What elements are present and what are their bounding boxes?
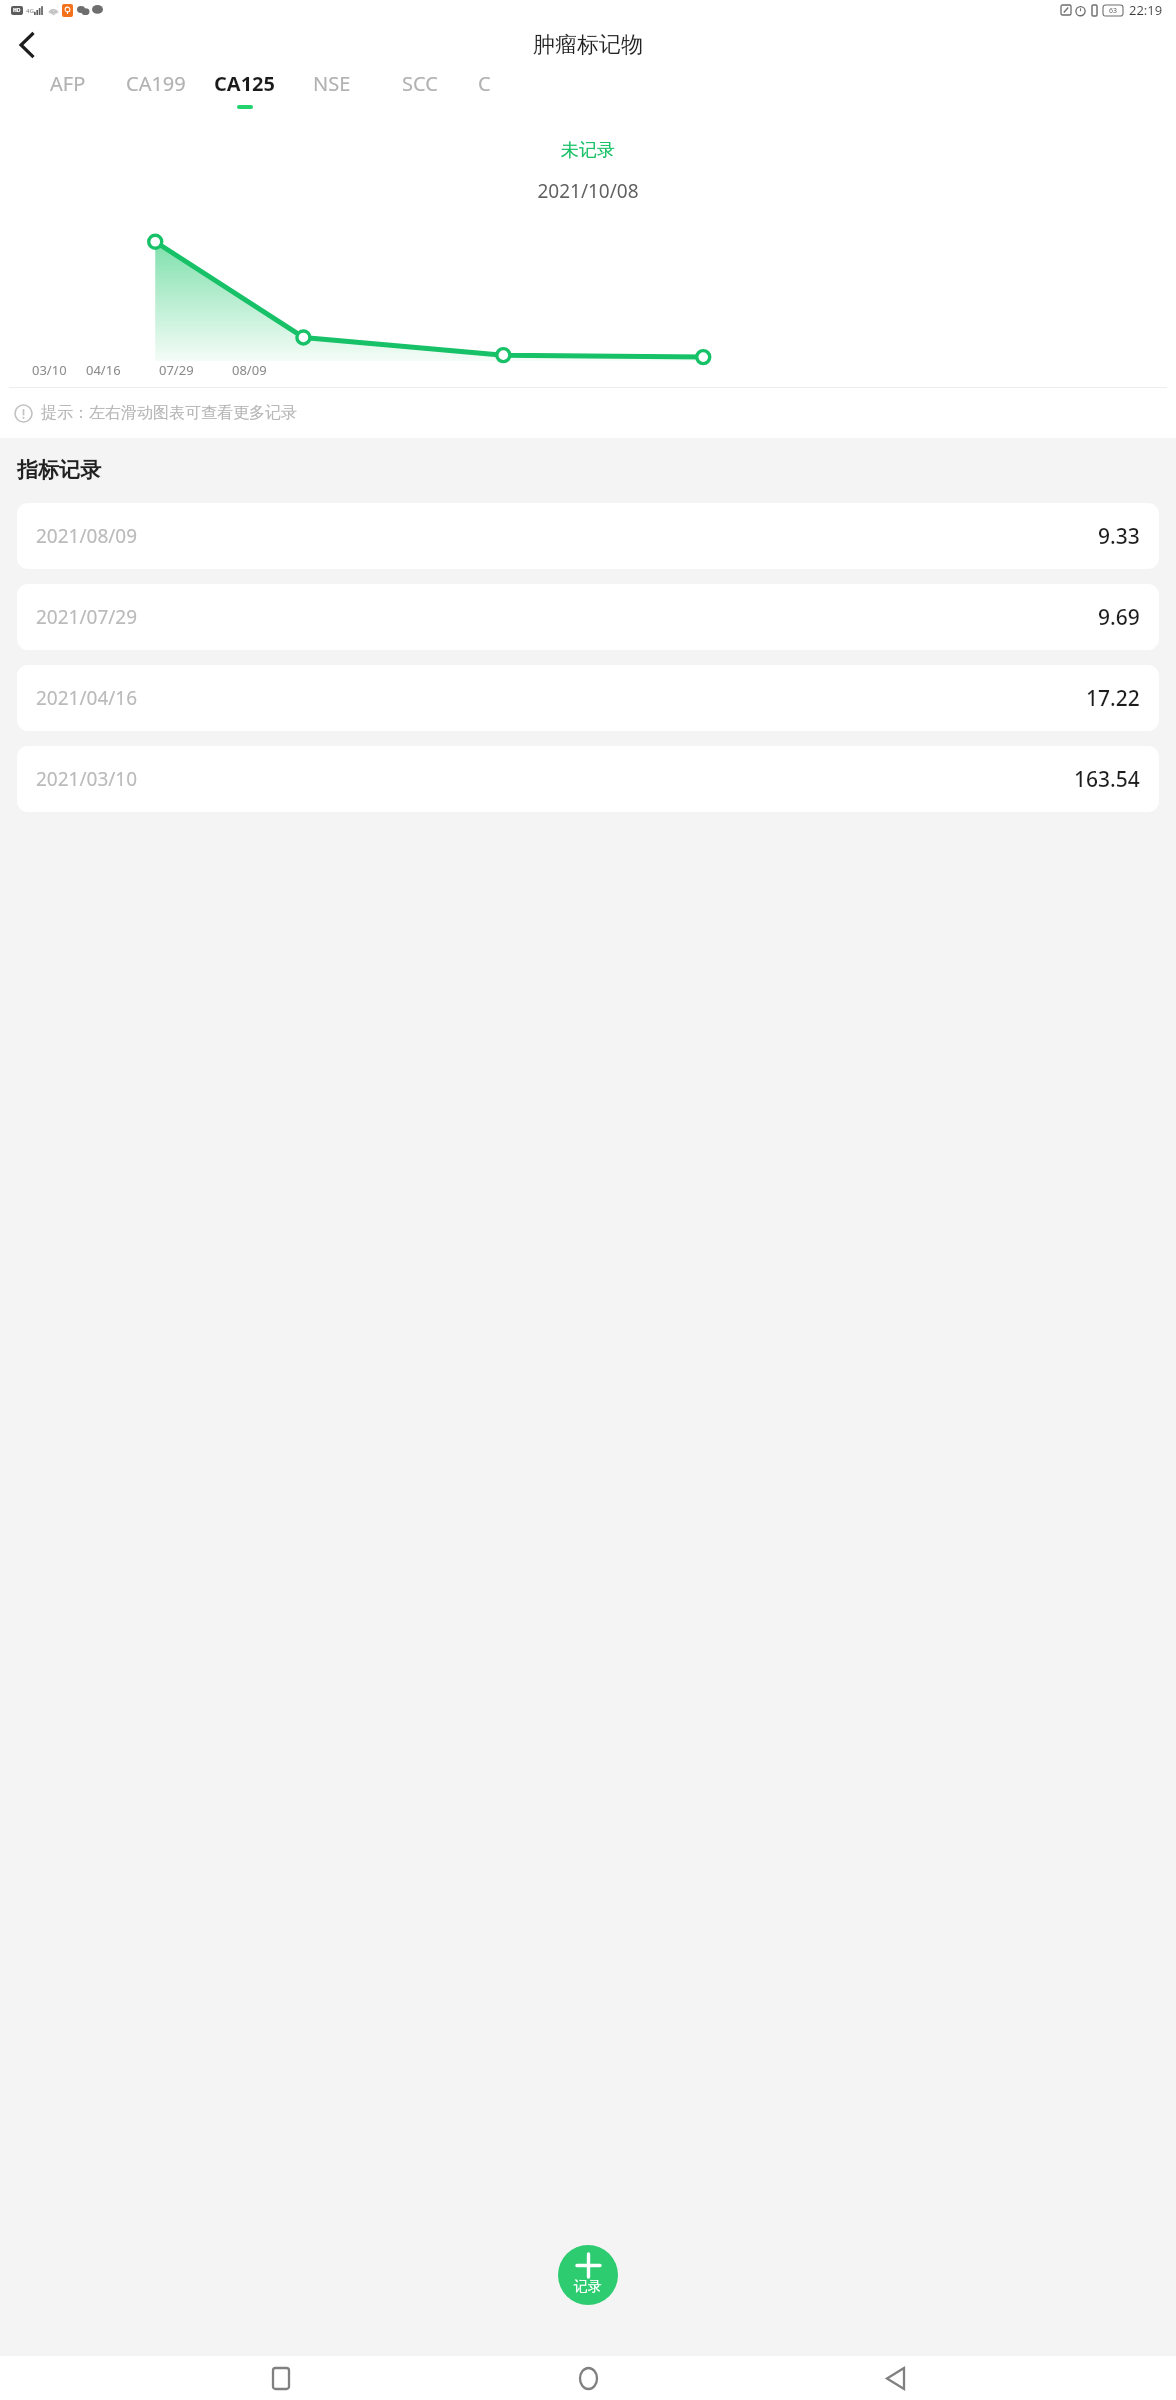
staticText: 08/09 [232, 361, 267, 379]
staticText: 记录 [574, 2278, 602, 2296]
staticText: 04/16 [86, 361, 121, 379]
staticText: 2021/07/29 [36, 604, 138, 630]
button[interactable]: AFP [24, 70, 112, 112]
staticText: C [478, 70, 491, 97]
staticText: 4G [26, 7, 34, 15]
button[interactable]: 记录 [558, 2245, 618, 2305]
staticText: 9.69 [1098, 603, 1140, 632]
staticText: CA125 [214, 70, 275, 97]
staticText: 2021/08/09 [36, 523, 138, 549]
button[interactable]: NSE [288, 70, 376, 112]
button[interactable]: C [464, 70, 504, 112]
staticText: 提示：左右滑动图表可查看更多记录 [41, 403, 297, 423]
button[interactable]: Back [869, 2356, 921, 2400]
staticText: 2021/04/16 [36, 685, 138, 711]
button[interactable]: Home [562, 2356, 614, 2400]
button[interactable]: 2021/03/10 [17, 746, 1159, 812]
staticText: 07/29 [159, 361, 194, 379]
staticText: 17.22 [1086, 684, 1140, 713]
staticText: 9.33 [1098, 522, 1140, 551]
staticText: 2021/10/08 [0, 178, 1176, 204]
staticText: SCC [402, 70, 438, 97]
button[interactable]: Recents [255, 2356, 307, 2400]
staticText: 肿瘤标记物 [533, 31, 643, 59]
button[interactable]: 2021/04/16 [17, 665, 1159, 731]
button[interactable]: CA199 [112, 70, 200, 112]
staticText: 03/10 [32, 361, 67, 379]
staticText: 指标记录 [17, 457, 101, 483]
staticText: 未记录 [0, 139, 1176, 162]
staticText: 163.54 [1074, 765, 1140, 794]
staticText: 63 [1109, 6, 1118, 16]
staticText: 22:19 [1129, 1, 1163, 19]
button[interactable]: CA125 [200, 70, 288, 112]
staticText: CA199 [126, 70, 186, 97]
staticText: 2021/03/10 [36, 766, 138, 792]
staticText: HD [13, 7, 21, 14]
button[interactable]: 2021/08/09 [17, 503, 1159, 569]
staticText: NSE [313, 70, 351, 97]
staticText: AFP [50, 70, 86, 97]
button[interactable]: 2021/07/29 [17, 584, 1159, 650]
button[interactable]: SCC [376, 70, 464, 112]
button[interactable]: Back [4, 23, 48, 67]
